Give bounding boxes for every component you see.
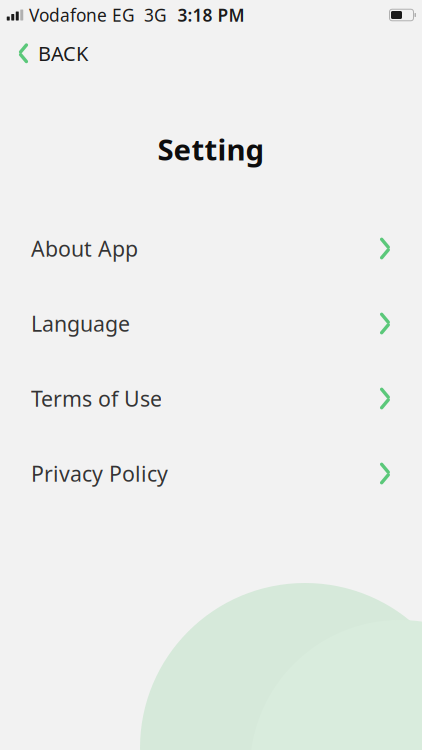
button[interactable]: BACK: [0, 32, 106, 75]
button[interactable]: Privacy Policy: [0, 450, 422, 496]
staticText: About App: [31, 234, 138, 263]
button[interactable]: About App: [0, 225, 422, 271]
button[interactable]: Language: [0, 300, 422, 346]
staticText: Terms of Use: [31, 384, 162, 413]
staticText: Privacy Policy: [31, 459, 168, 488]
staticText: 3G: [144, 3, 167, 26]
staticText: Language: [31, 309, 130, 338]
staticText: 3:18 PM: [177, 3, 244, 26]
button[interactable]: Terms of Use: [0, 375, 422, 421]
staticText: Setting: [157, 130, 264, 169]
staticText: BACK: [38, 40, 88, 67]
staticText: Vodafone EG: [29, 3, 135, 26]
